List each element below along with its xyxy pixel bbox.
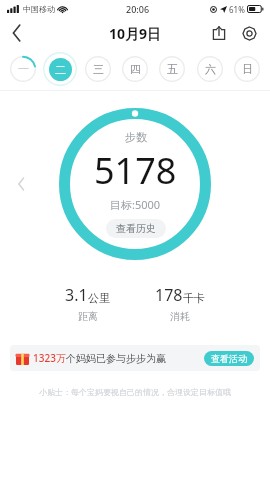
button[interactable]: 二: [43, 52, 77, 86]
button[interactable]: 3.1: [51, 282, 124, 325]
staticText: 178: [155, 284, 183, 306]
staticText: 六: [205, 62, 216, 76]
staticText: 查看活动: [211, 353, 247, 364]
button[interactable]: 三: [81, 52, 115, 86]
staticText: 61%: [229, 4, 245, 15]
staticText: 1323万: [33, 351, 66, 365]
staticText: 20:06: [126, 3, 150, 15]
button[interactable]: 1323万: [10, 345, 260, 371]
staticText: 距离: [78, 310, 98, 323]
staticText: 五: [167, 62, 178, 76]
staticText: 四: [130, 62, 141, 76]
staticText: 个妈妈已参与步步为赢: [66, 352, 166, 365]
button[interactable]: Back: [0, 18, 34, 48]
staticText: 消耗: [170, 310, 190, 323]
staticText: 小贴士：每个宝妈要视自己的情况，合理设定目标值哦: [39, 387, 231, 397]
staticText: 二: [55, 63, 66, 77]
staticText: 日: [242, 62, 253, 76]
button[interactable]: 四: [118, 52, 152, 86]
button[interactable]: 一: [6, 52, 40, 86]
staticText: 目标:5000: [110, 197, 161, 212]
button[interactable]: Previous day: [8, 171, 34, 197]
button[interactable]: 五: [155, 52, 189, 86]
button[interactable]: 六: [193, 52, 227, 86]
button[interactable]: 178: [141, 282, 219, 325]
staticText: 中国移动: [23, 4, 55, 14]
staticText: 3.1: [65, 284, 88, 306]
staticText: 10月9日: [109, 24, 162, 43]
button[interactable]: 日: [230, 52, 264, 86]
staticText: 公里: [88, 291, 110, 305]
button[interactable]: 查看历史: [106, 219, 166, 238]
button[interactable]: Settings: [234, 18, 264, 48]
staticText: 千卡: [183, 291, 205, 305]
staticText: 步数: [125, 130, 147, 144]
staticText: 查看历史: [116, 222, 156, 235]
button[interactable]: Share: [204, 18, 234, 48]
staticText: 三: [93, 62, 104, 76]
staticText: 5178: [94, 146, 177, 195]
staticText: 一: [18, 62, 29, 76]
button[interactable]: 查看活动: [204, 351, 254, 366]
